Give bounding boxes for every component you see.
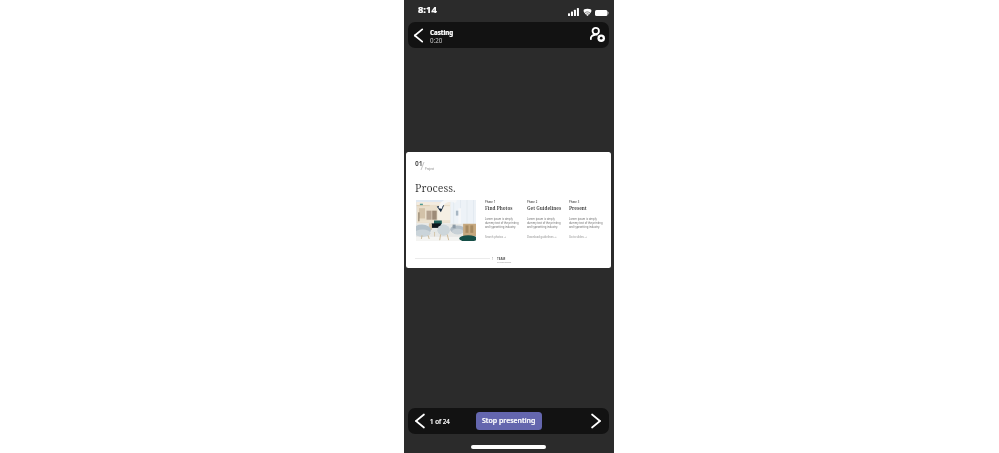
staticText: Search photos → [485, 235, 506, 239]
staticText: 1 of 24 [430, 417, 450, 425]
staticText: TEAM [497, 257, 506, 261]
staticText: 8:14 [418, 3, 437, 16]
button[interactable]: Previous slide [411, 412, 450, 430]
staticText: Project [425, 167, 435, 171]
staticText: Phase 2 [527, 200, 538, 204]
button[interactable]: Next slide [587, 412, 605, 430]
button[interactable]: Back [410, 27, 454, 44]
button[interactable]: Add people [590, 27, 606, 43]
staticText: 1 [492, 257, 494, 261]
staticText: Get Guidelines [527, 205, 562, 211]
staticText: Lorem ipsum is simply dummy text of the … [485, 217, 519, 229]
staticText: Stop presenting [482, 416, 536, 426]
staticText: Process. [415, 181, 456, 195]
staticText: Find Photos [485, 205, 513, 211]
staticText: 0:20 [430, 36, 443, 44]
staticText: Go to slides → [569, 235, 587, 239]
staticText: 01 [415, 159, 423, 168]
staticText: Presentation [497, 260, 512, 263]
staticText: Phase 3 [569, 200, 580, 204]
staticText: Lorem ipsum is simply dummy text of the … [569, 217, 603, 229]
staticText: Casting [430, 28, 454, 36]
staticText: Lorem ipsum is simply dummy text of the … [527, 217, 561, 229]
button[interactable]: Stop presenting [476, 412, 542, 430]
staticText: Phase 1 [485, 200, 496, 204]
staticText: Present [569, 205, 587, 211]
button[interactable]: Back [410, 27, 427, 44]
staticText: Download guidelines → [527, 235, 557, 239]
button[interactable]: Previous slide [411, 412, 429, 430]
